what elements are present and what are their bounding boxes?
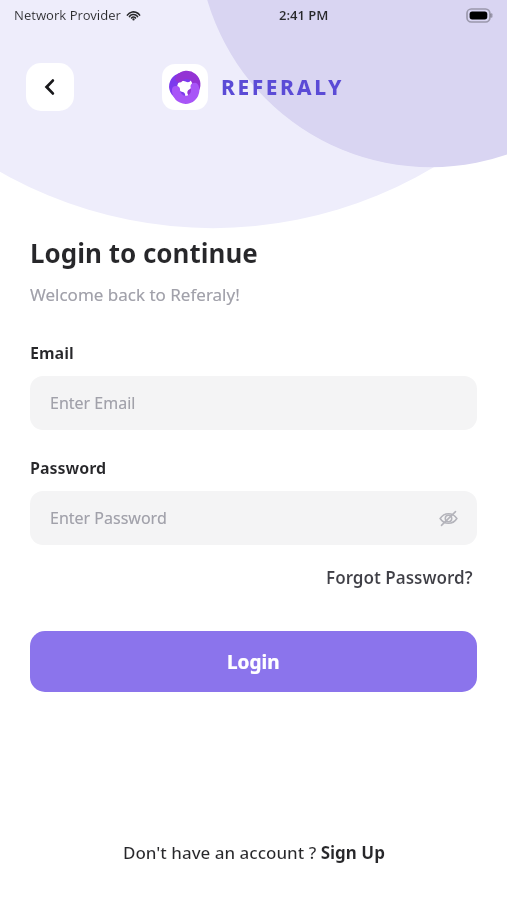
staticText: Network Provider bbox=[14, 6, 121, 24]
button[interactable]: Enter Password bbox=[30, 491, 477, 545]
staticText: Enter Email bbox=[50, 392, 136, 414]
staticText: 2:41 PM bbox=[279, 6, 329, 24]
button[interactable]: Don't have an account ? Sign Up bbox=[117, 835, 391, 870]
button[interactable]: Login bbox=[30, 631, 477, 692]
staticText: Login to continue bbox=[30, 235, 258, 270]
staticText: Enter Password bbox=[50, 507, 167, 529]
staticText: Don't have an account ? Sign Up bbox=[123, 841, 385, 864]
button[interactable]: Show password bbox=[431, 501, 465, 535]
staticText: REFERALY bbox=[221, 73, 345, 102]
button[interactable]: Forgot Password? bbox=[322, 562, 477, 593]
staticText: Forgot Password? bbox=[326, 566, 473, 589]
staticText: Password bbox=[30, 457, 107, 479]
button[interactable]: Enter Email bbox=[30, 376, 477, 430]
staticText: Login bbox=[227, 649, 280, 675]
staticText: Welcome back to Referaly! bbox=[30, 283, 240, 306]
staticText: Email bbox=[30, 342, 74, 364]
button[interactable]: Back bbox=[26, 63, 74, 111]
